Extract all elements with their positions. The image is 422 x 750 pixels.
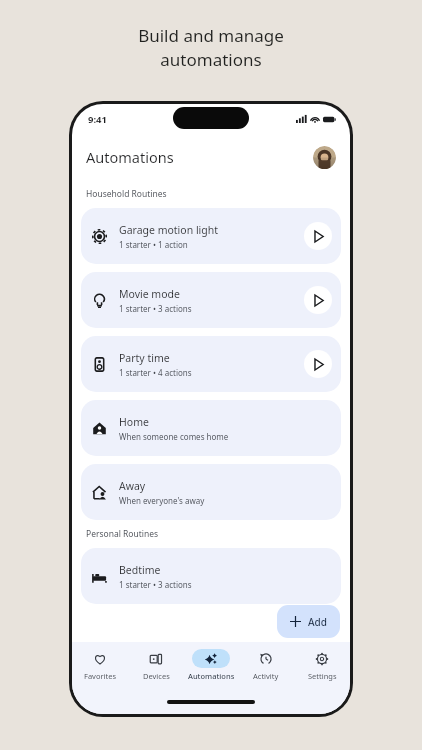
button[interactable]: Play Garage motion light <box>304 222 332 250</box>
staticText: When everyone's away <box>119 495 205 506</box>
staticText: Bedtime <box>119 563 161 577</box>
button[interactable]: Account <box>313 146 336 169</box>
staticText: 9:41 <box>88 113 107 126</box>
button[interactable]: Automations <box>184 648 238 681</box>
staticText: Home <box>119 415 149 429</box>
button[interactable]: Devices <box>129 648 183 681</box>
staticText: Favorites <box>84 671 117 681</box>
staticText: Automations <box>86 147 174 167</box>
staticText: 1 starter • 3 actions <box>119 303 192 314</box>
button[interactable]: Settings <box>295 648 349 681</box>
staticText: 1 starter • 4 actions <box>119 367 192 378</box>
button[interactable]: Away <box>81 464 341 520</box>
button[interactable]: Activity <box>239 648 293 681</box>
staticText: Devices <box>143 671 170 681</box>
button[interactable]: Favorites <box>73 648 127 681</box>
button[interactable]: Party time <box>81 336 341 392</box>
staticText: Activity <box>253 671 279 681</box>
button[interactable]: Play Movie mode <box>304 286 332 314</box>
staticText: Personal Routines <box>86 528 159 540</box>
staticText: Movie mode <box>119 287 180 301</box>
staticText: Build and manage automations <box>138 24 284 71</box>
staticText: 1 starter • 1 action <box>119 239 188 250</box>
staticText: 1 starter • 3 actions <box>119 579 192 590</box>
staticText: Household Routines <box>86 188 167 200</box>
button[interactable]: Movie mode <box>81 272 341 328</box>
staticText: Automations <box>188 671 235 681</box>
button[interactable]: Home <box>81 400 341 456</box>
staticText: Garage motion light <box>119 223 219 237</box>
button[interactable]: Play Party time <box>304 350 332 378</box>
staticText: Away <box>119 479 146 493</box>
staticText: When someone comes home <box>119 431 229 442</box>
button[interactable]: Garage motion light <box>81 208 341 264</box>
staticText: Party time <box>119 351 170 365</box>
staticText: Settings <box>308 671 337 681</box>
button[interactable]: Add <box>277 605 340 638</box>
staticText: Add <box>308 615 327 629</box>
button[interactable]: Bedtime <box>81 548 341 604</box>
